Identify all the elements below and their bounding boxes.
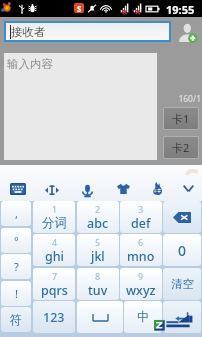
staticText: 符 <box>10 312 22 327</box>
staticText: pqrs <box>41 282 68 299</box>
staticText: 卡2 <box>172 140 190 155</box>
button[interactable]: 1 <box>33 201 75 233</box>
staticText: wxyz <box>126 282 156 299</box>
button[interactable]: ! <box>1 281 31 306</box>
button[interactable]: Add contact <box>173 19 199 45</box>
staticText: ! <box>15 286 18 301</box>
staticText: 3 <box>138 203 144 215</box>
button[interactable]: 卡1 <box>164 108 198 129</box>
staticText: 7 <box>52 270 58 282</box>
button[interactable]: 符 <box>1 307 31 332</box>
button[interactable]: 8 <box>77 268 119 300</box>
button[interactable]: 7 <box>33 268 75 300</box>
staticText: 输入内容 <box>7 57 53 71</box>
button[interactable] <box>163 201 201 233</box>
staticText: 接收者 <box>11 25 46 39</box>
button[interactable]: 6 <box>120 234 162 266</box>
button[interactable]: Voice input <box>74 177 100 203</box>
button[interactable]: 中 <box>124 301 162 333</box>
staticText: S <box>185 166 200 175</box>
staticText: 1 <box>52 203 58 215</box>
staticText: ? <box>14 259 19 274</box>
staticText: mno <box>127 248 155 265</box>
button[interactable]: , <box>1 201 31 226</box>
staticText: jkl <box>91 248 105 265</box>
staticText: 4 <box>52 236 58 248</box>
staticText: 9 <box>138 270 144 282</box>
button[interactable]: 5 <box>77 234 119 266</box>
button[interactable]: ° <box>1 228 31 253</box>
staticText: def <box>131 215 151 232</box>
button[interactable]: 清空 <box>163 268 201 300</box>
staticText: 5 <box>95 236 101 248</box>
button[interactable]: 3 <box>120 201 162 233</box>
staticText: 分词 <box>42 215 67 231</box>
button[interactable]: 接收者 <box>6 23 169 40</box>
staticText: 0 <box>178 241 187 260</box>
button[interactable]: 输入内容 <box>4 53 157 160</box>
button[interactable]: 4 <box>33 234 75 266</box>
staticText: S <box>77 3 82 13</box>
staticText: 160/1 <box>160 93 201 105</box>
staticText: 2 <box>95 203 101 215</box>
button[interactable] <box>77 301 123 333</box>
staticText: 123 <box>43 309 65 326</box>
staticText: abc <box>87 215 109 232</box>
button[interactable]: 卡2 <box>164 137 198 158</box>
button[interactable]: 0 <box>163 234 201 266</box>
staticText: tuv <box>88 282 108 299</box>
button[interactable]: Move cursor <box>39 177 65 203</box>
staticText: 8 <box>95 270 101 282</box>
staticText: 6 <box>138 236 144 248</box>
staticText: 卡1 <box>172 111 190 126</box>
staticText: 清空 <box>171 277 194 291</box>
button[interactable]: Hide keyboard <box>175 175 201 201</box>
button[interactable]: Emoji <box>144 175 170 201</box>
staticText: 19:55 <box>166 2 195 17</box>
staticText: 中 <box>137 309 150 325</box>
button[interactable]: ? <box>1 254 31 279</box>
button[interactable]: Keyboard <box>5 176 31 202</box>
button[interactable] <box>163 301 201 333</box>
button[interactable]: 2 <box>77 201 119 233</box>
staticText: ° <box>14 233 19 248</box>
button[interactable]: Theme <box>110 175 136 201</box>
button[interactable]: 9 <box>120 268 162 300</box>
staticText: ghi <box>45 248 64 265</box>
staticText: , <box>15 206 18 221</box>
button[interactable]: 123 <box>33 301 75 333</box>
